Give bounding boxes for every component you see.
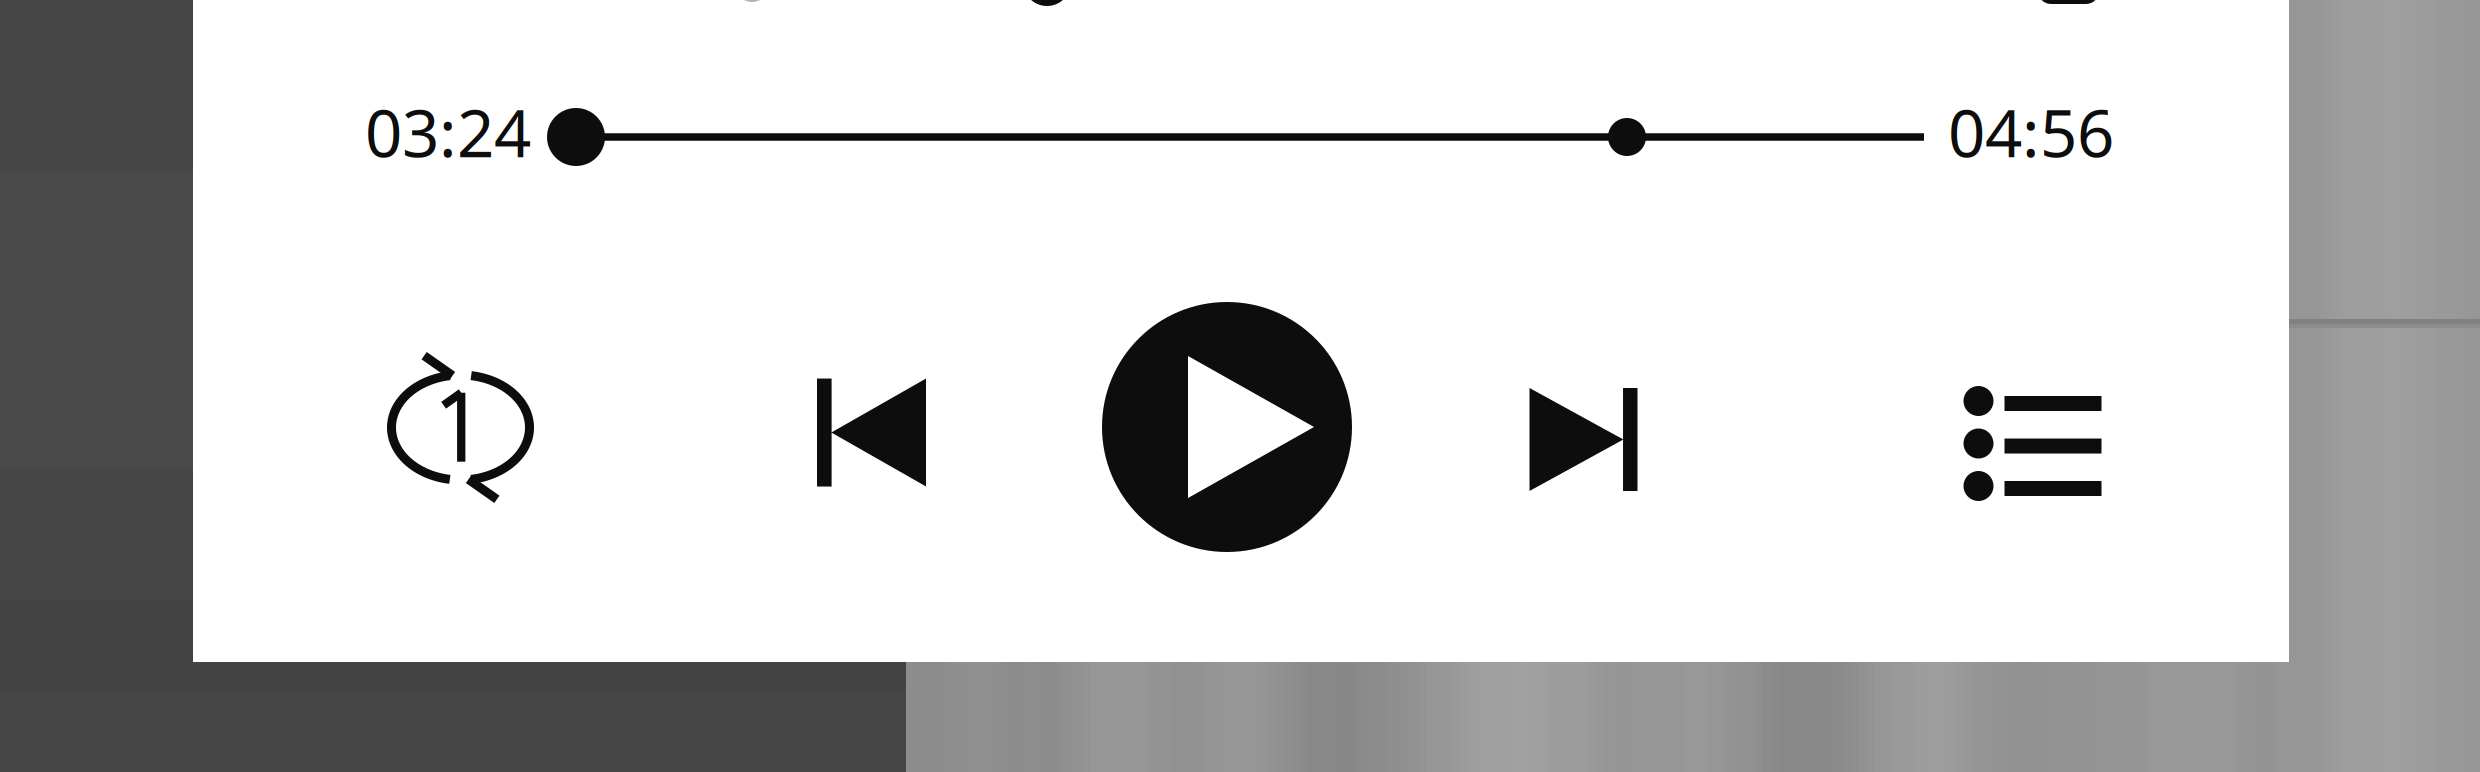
button[interactable]: Repeat One [343,310,578,545]
staticText: 03:24 [365,89,531,175]
staticText: 04:56 [1948,89,2114,175]
button[interactable]: Next Track [1466,322,1701,557]
button[interactable]: Previous Track [754,315,989,550]
button[interactable]: Playing Next [1915,326,2150,561]
button[interactable]: Play [1082,282,1372,572]
